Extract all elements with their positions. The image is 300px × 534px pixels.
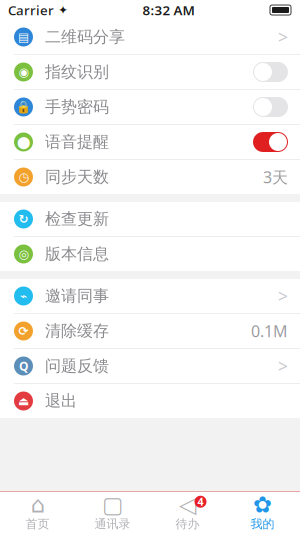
button[interactable]: ⏏ — [0, 384, 300, 418]
staticText: > — [278, 284, 288, 307]
button[interactable]: ↻ — [0, 202, 300, 236]
staticText: ◷ — [18, 170, 28, 184]
staticText: 🔒 — [16, 100, 31, 114]
staticText: > — [278, 25, 288, 48]
staticText: 通讯录 — [94, 517, 130, 531]
button[interactable]: ⬤ — [0, 125, 300, 159]
staticText: 8:32 AM — [142, 1, 194, 19]
staticText: ↻ — [18, 212, 28, 226]
button[interactable]: ◁ — [150, 493, 225, 533]
button[interactable]: ✿ — [225, 493, 300, 533]
button[interactable]: ⌁ — [0, 279, 300, 313]
button[interactable]: ◎ — [0, 237, 300, 271]
staticText: 待办 — [175, 517, 199, 531]
staticText: ⟳ — [18, 324, 28, 338]
staticText: 退出 — [45, 391, 77, 411]
staticText: 3天 — [263, 166, 288, 188]
staticText: 语音提醒 — [45, 132, 109, 152]
staticText: ✦ — [58, 3, 68, 17]
staticText: 我的 — [250, 517, 274, 531]
staticText: 清除缓存 — [45, 321, 109, 341]
button[interactable]: 🔒 — [0, 90, 300, 124]
staticText: 首页 — [25, 517, 49, 531]
staticText: 0.1M — [251, 320, 288, 342]
staticText: ◎ — [18, 247, 28, 261]
staticText: Q — [19, 358, 28, 374]
button[interactable]: ◉ — [0, 55, 300, 89]
staticText: 二维码分享 — [45, 27, 125, 47]
staticText: ◁ — [179, 492, 196, 517]
button[interactable]: ◷ — [0, 160, 300, 194]
staticText: 问题反馈 — [45, 356, 109, 376]
staticText: ⌂ — [30, 492, 44, 517]
button[interactable]: ▤ — [0, 20, 300, 54]
staticText: ⏏ — [18, 394, 29, 408]
staticText: 检查更新 — [45, 209, 109, 229]
staticText: ▤ — [18, 30, 29, 44]
staticText: 手势密码 — [45, 97, 109, 117]
staticText: 版本信息 — [45, 244, 109, 264]
staticText: ⬤ — [17, 135, 30, 149]
staticText: ◉ — [18, 65, 28, 79]
staticText: 同步天数 — [45, 167, 109, 187]
staticText: ✿ — [253, 492, 272, 517]
staticText: 指纹识别 — [45, 62, 109, 82]
staticText: 4 — [197, 495, 203, 509]
button[interactable]: ⟳ — [0, 314, 300, 348]
staticText: Carrier — [8, 1, 54, 19]
button[interactable]: Q — [0, 349, 300, 383]
button[interactable]: ⌂ — [0, 493, 75, 533]
staticText: 邀请同事 — [45, 286, 109, 306]
button[interactable]: ▢ — [75, 493, 150, 533]
staticText: ▢ — [102, 492, 123, 517]
staticText: > — [278, 354, 288, 377]
staticText: ⌁ — [20, 289, 27, 303]
